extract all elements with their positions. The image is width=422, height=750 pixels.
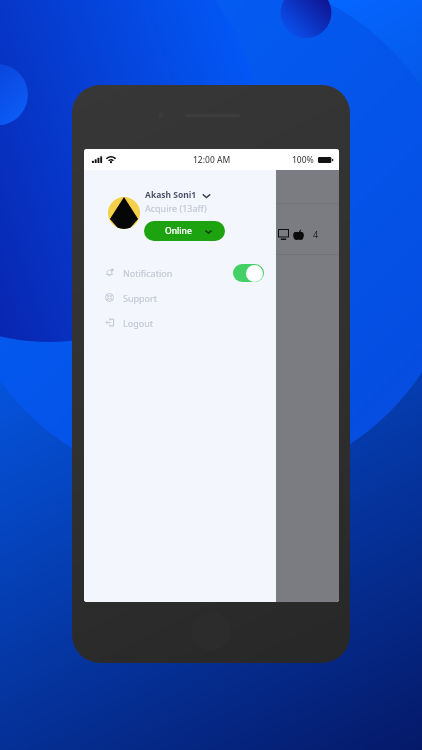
staticText: Support — [123, 292, 157, 304]
button[interactable]: Notification — [84, 260, 276, 285]
button[interactable]: Toggle notifications — [233, 264, 264, 282]
button[interactable]: Online — [144, 221, 225, 241]
staticText: 4 — [313, 228, 319, 240]
staticText: Acquire (13aff) — [145, 202, 207, 214]
button[interactable]: Support — [84, 285, 276, 310]
staticText: Akash Soni1 — [145, 189, 197, 201]
staticText: Logout — [123, 317, 153, 329]
button[interactable]: Desktop — [278, 229, 289, 240]
button[interactable]: Logout — [84, 310, 276, 335]
button[interactable]: Apple — [293, 229, 304, 240]
staticText: 100% — [292, 154, 314, 166]
staticText: Online — [165, 225, 192, 237]
button[interactable]: Account menu — [201, 190, 212, 201]
staticText: Notification — [123, 267, 173, 279]
staticText: 12:00 AM — [193, 154, 231, 166]
